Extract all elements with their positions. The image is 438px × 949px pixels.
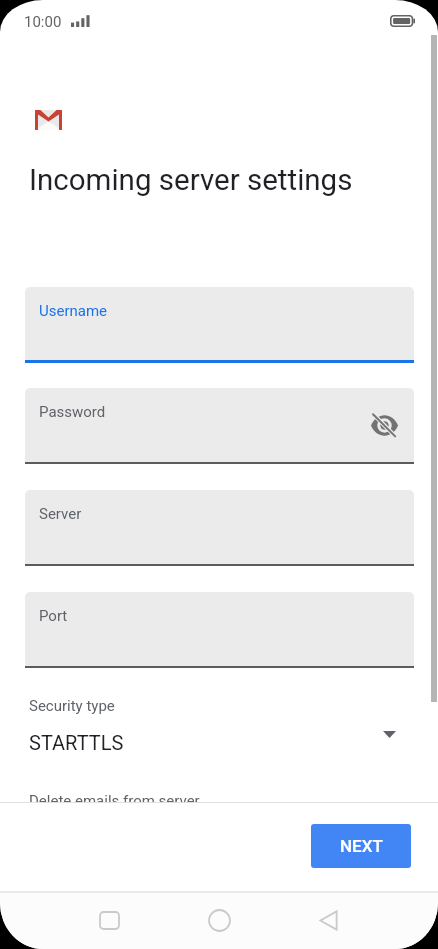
staticText: STARTTLS	[29, 731, 124, 754]
button[interactable]: Username	[25, 287, 414, 363]
button[interactable]: Recents	[79, 891, 139, 949]
staticText: Server	[39, 505, 82, 523]
staticText: Security type	[29, 697, 115, 715]
button[interactable]: Password	[25, 388, 414, 464]
button[interactable]: NEXT	[311, 824, 411, 868]
button[interactable]: Home	[189, 891, 249, 949]
staticText: NEXT	[340, 836, 383, 856]
button[interactable]: Server	[25, 490, 414, 566]
staticText: Password	[39, 403, 106, 421]
button[interactable]: Port	[25, 592, 414, 668]
button[interactable]: Back	[298, 891, 358, 949]
button[interactable]: Show password	[362, 403, 406, 447]
staticText: Incoming server settings	[29, 163, 353, 198]
staticText: Port	[39, 607, 68, 625]
button[interactable]: Security type	[0, 694, 438, 756]
staticText: 10:00	[24, 13, 62, 31]
staticText: Username	[39, 302, 108, 320]
staticText: Delete emails from server	[29, 792, 200, 810]
